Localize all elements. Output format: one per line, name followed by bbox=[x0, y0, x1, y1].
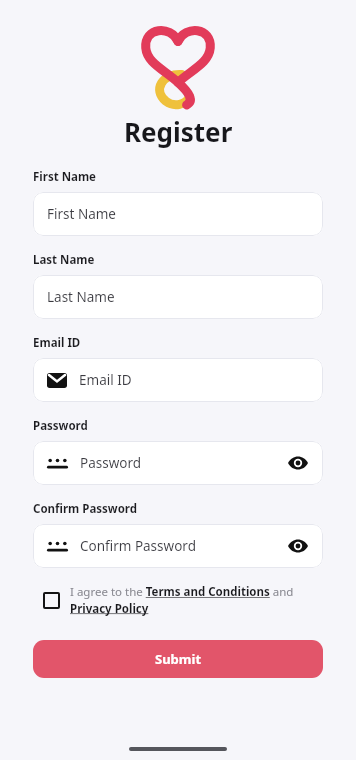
staticText: Last Name bbox=[33, 252, 95, 268]
staticText: First Name bbox=[33, 169, 96, 185]
staticText: Register bbox=[124, 114, 233, 149]
button[interactable]: Accept terms checkbox bbox=[33, 582, 323, 618]
other: Email bbox=[47, 373, 67, 388]
button[interactable]: Submit bbox=[33, 640, 323, 678]
staticText: Confirm Password bbox=[80, 537, 287, 555]
button[interactable]: Last Name bbox=[33, 275, 323, 319]
staticText: I agree to the Terms and Conditions and … bbox=[70, 584, 294, 616]
other: Accept terms checkbox bbox=[43, 592, 60, 609]
other: Password bbox=[47, 456, 68, 470]
button[interactable]: Password bbox=[33, 441, 323, 485]
other: Password bbox=[47, 539, 68, 553]
button[interactable]: Password bbox=[33, 524, 323, 568]
staticText: Password bbox=[80, 454, 287, 472]
staticText: Password bbox=[33, 418, 88, 434]
staticText: First Name bbox=[47, 205, 309, 223]
button[interactable]: Email bbox=[33, 358, 323, 402]
other: App logo bbox=[135, 18, 221, 110]
staticText: Last Name bbox=[47, 288, 309, 306]
button[interactable]: Toggle password visibility bbox=[287, 452, 309, 474]
staticText: Email ID bbox=[33, 335, 81, 351]
staticText: Confirm Password bbox=[33, 501, 138, 517]
button[interactable]: First Name bbox=[33, 192, 323, 236]
staticText: Submit bbox=[155, 650, 202, 668]
staticText: Email ID bbox=[79, 371, 309, 389]
button[interactable]: Toggle password visibility bbox=[287, 535, 309, 557]
